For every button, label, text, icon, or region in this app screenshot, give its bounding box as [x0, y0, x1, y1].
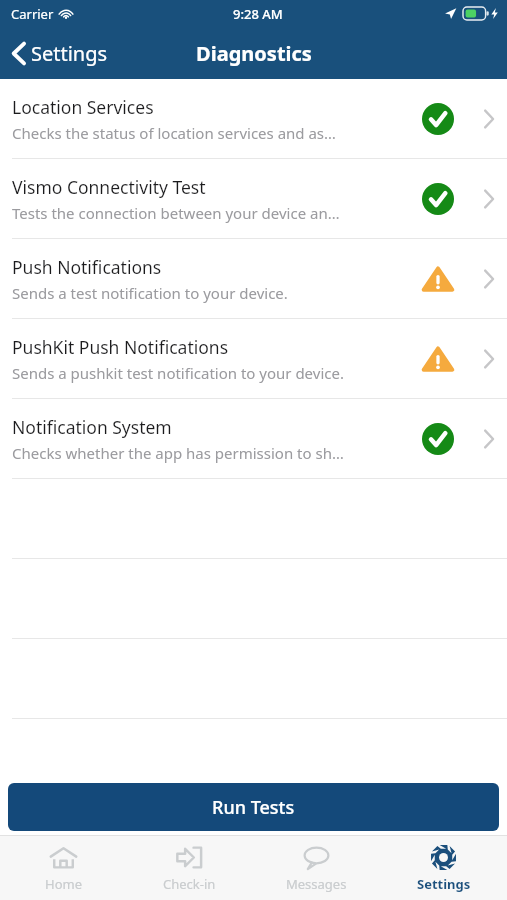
staticText: Push Notifications: [12, 255, 162, 279]
staticText: Vismo Connectivity Test: [12, 175, 206, 199]
staticText: Settings: [31, 40, 108, 67]
staticText: Diagnostics: [196, 40, 312, 67]
staticText: PushKit Push Notifications: [12, 335, 229, 359]
button[interactable]: PushKit Push Notifications: [0, 319, 507, 398]
staticText: Checks whether the app has permission to…: [12, 443, 344, 463]
staticText: 9:28 AM: [233, 5, 283, 23]
button[interactable]: Home: [0, 836, 126, 900]
staticText: Location Services: [12, 95, 154, 119]
staticText: Carrier: [11, 5, 54, 23]
button[interactable]: Notification System: [0, 399, 507, 478]
staticText: Notification System: [12, 415, 172, 439]
button[interactable]: Vismo Connectivity Test: [0, 159, 507, 238]
staticText: Check-in: [163, 875, 216, 893]
staticText: Home: [45, 875, 82, 893]
staticText: Tests the connection between your device…: [12, 203, 340, 223]
staticText: Run Tests: [212, 795, 295, 820]
staticText: Checks the status of location services a…: [12, 123, 336, 143]
staticText: Settings: [417, 875, 471, 893]
button[interactable]: Check-in: [126, 836, 253, 900]
button[interactable]: Run Tests: [8, 783, 499, 831]
button[interactable]: Settings: [380, 836, 507, 900]
button[interactable]: Push Notifications: [0, 239, 507, 318]
staticText: Sends a pushkit test notification to you…: [12, 363, 344, 383]
button[interactable]: Location Services: [0, 79, 507, 158]
button[interactable]: Messages: [253, 836, 380, 900]
staticText: Messages: [286, 875, 347, 893]
button[interactable]: Settings: [0, 27, 122, 79]
staticText: Sends a test notification to your device…: [12, 283, 288, 303]
